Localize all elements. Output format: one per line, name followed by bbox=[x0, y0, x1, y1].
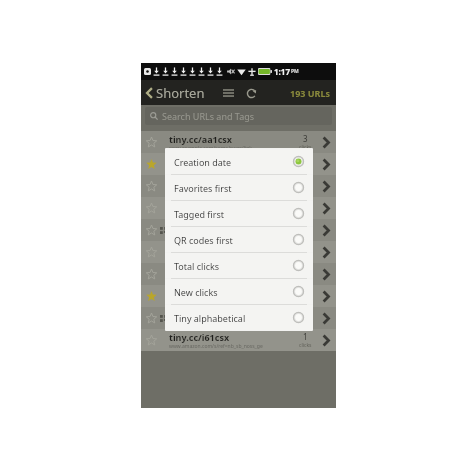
button[interactable]: tiny.cc/na2csx bbox=[141, 285, 336, 307]
button[interactable]: tiny.cc/aa1csx bbox=[141, 131, 336, 153]
staticText: tiny.cc/ee5csx bbox=[169, 221, 233, 233]
staticText: 1 bbox=[303, 331, 308, 342]
staticText: Favorites first bbox=[174, 182, 293, 194]
button[interactable]: Open details bbox=[316, 285, 336, 307]
button[interactable]: QR codes first bbox=[165, 227, 313, 252]
button[interactable]: Menu bbox=[220, 85, 236, 101]
staticText: clicks bbox=[299, 320, 312, 327]
button[interactable]: tiny.cc/ee5csx bbox=[141, 219, 336, 241]
staticText: tiny.cc/bb2csx bbox=[169, 155, 233, 167]
button[interactable]: Total clicks bbox=[165, 253, 313, 278]
staticText: www.example.com/some/page/link bbox=[169, 145, 253, 152]
staticText: tiny.cc/aa1csx bbox=[169, 133, 233, 145]
staticText: clicks bbox=[299, 254, 312, 261]
staticText: clicks bbox=[299, 166, 312, 173]
staticText: tiny.cc/ff6csx bbox=[169, 243, 229, 255]
button[interactable]: Favorites first bbox=[165, 175, 313, 200]
staticText: 0 bbox=[303, 309, 308, 320]
staticText: 3 bbox=[303, 133, 308, 144]
button[interactable]: tiny.cc/a91csx bbox=[141, 307, 336, 329]
staticText: clicks bbox=[299, 144, 312, 151]
staticText: 2 bbox=[303, 177, 308, 188]
staticText: Total clicks bbox=[174, 260, 293, 272]
staticText: QR codes first bbox=[174, 234, 293, 246]
button[interactable]: Tagged first bbox=[165, 201, 313, 226]
button[interactable]: 193 URLs bbox=[290, 87, 331, 99]
button[interactable]: Open details bbox=[316, 307, 336, 329]
staticText: www.amazon.com/s/ref=nb_sb_noss_ge bbox=[169, 343, 263, 350]
button[interactable]: Open details bbox=[316, 175, 336, 197]
button[interactable]: Open details bbox=[316, 241, 336, 263]
staticText: clicks bbox=[299, 298, 312, 305]
button[interactable]: tiny.cc/gg7csx bbox=[141, 263, 336, 285]
button[interactable]: Refresh bbox=[243, 85, 259, 101]
staticText: tiny.cc/gg7csx bbox=[169, 265, 233, 277]
button[interactable]: Search URLs and Tags bbox=[145, 107, 332, 125]
button[interactable]: Open details bbox=[316, 131, 336, 153]
staticText: New clicks bbox=[174, 286, 293, 298]
staticText: tiny.cc/na2csx bbox=[169, 287, 233, 299]
staticText: clicks bbox=[299, 232, 312, 239]
staticText: 7 bbox=[303, 155, 308, 166]
button[interactable]: Open details bbox=[316, 219, 336, 241]
staticText: www.example.com/store/item/hij bbox=[169, 277, 248, 284]
staticText: Search URLs and Tags bbox=[162, 110, 255, 122]
staticText: www.cnet.com/news/how-your-out-of- bbox=[169, 299, 260, 306]
staticText: www.bbc.com/news/science_and_enviro bbox=[169, 321, 264, 328]
staticText: 4 bbox=[303, 287, 308, 298]
staticText: Tagged first bbox=[174, 208, 293, 220]
staticText: Shorten bbox=[156, 84, 205, 102]
staticText: clicks bbox=[299, 276, 312, 283]
staticText: 9 bbox=[303, 221, 308, 232]
button[interactable]: Open details bbox=[316, 263, 336, 285]
button[interactable]: Creation date bbox=[165, 149, 313, 174]
staticText: tiny.cc/dd4csx bbox=[169, 199, 233, 211]
staticText: Creation date bbox=[174, 156, 293, 168]
staticText: tiny.cc/i61csx bbox=[169, 331, 230, 343]
staticText: www.example.com/data/page/zzz bbox=[169, 211, 249, 218]
staticText: clicks bbox=[299, 210, 312, 217]
button[interactable]: New clicks bbox=[165, 279, 313, 304]
button[interactable]: tiny.cc/ff6csx bbox=[141, 241, 336, 263]
staticText: 6 bbox=[303, 265, 308, 276]
staticText: PM bbox=[291, 68, 299, 75]
staticText: www.example.com/docs/ref/abcd bbox=[169, 233, 248, 240]
staticText: tiny.cc/cc3csx bbox=[169, 177, 231, 189]
button[interactable]: tiny.cc/dd4csx bbox=[141, 197, 336, 219]
staticText: Tiny alphabetical bbox=[174, 312, 293, 324]
staticText: 1 bbox=[303, 243, 308, 254]
button[interactable]: Open details bbox=[316, 197, 336, 219]
button[interactable]: Shorten bbox=[146, 84, 207, 102]
button[interactable]: tiny.cc/cc3csx bbox=[141, 175, 336, 197]
staticText: clicks bbox=[299, 188, 312, 195]
button[interactable]: tiny.cc/bb2csx bbox=[141, 153, 336, 175]
staticText: 5 bbox=[303, 199, 308, 210]
button[interactable]: tiny.cc/i61csx bbox=[141, 329, 336, 351]
staticText: clicks bbox=[299, 342, 312, 349]
staticText: 1:17 bbox=[274, 66, 290, 77]
button[interactable]: Open details bbox=[316, 153, 336, 175]
button[interactable]: Open details bbox=[316, 329, 336, 351]
button[interactable]: Tiny alphabetical bbox=[165, 305, 313, 330]
staticText: tiny.cc/a91csx bbox=[169, 309, 232, 321]
staticText: www.example.com/info/detail/yy bbox=[169, 189, 247, 196]
